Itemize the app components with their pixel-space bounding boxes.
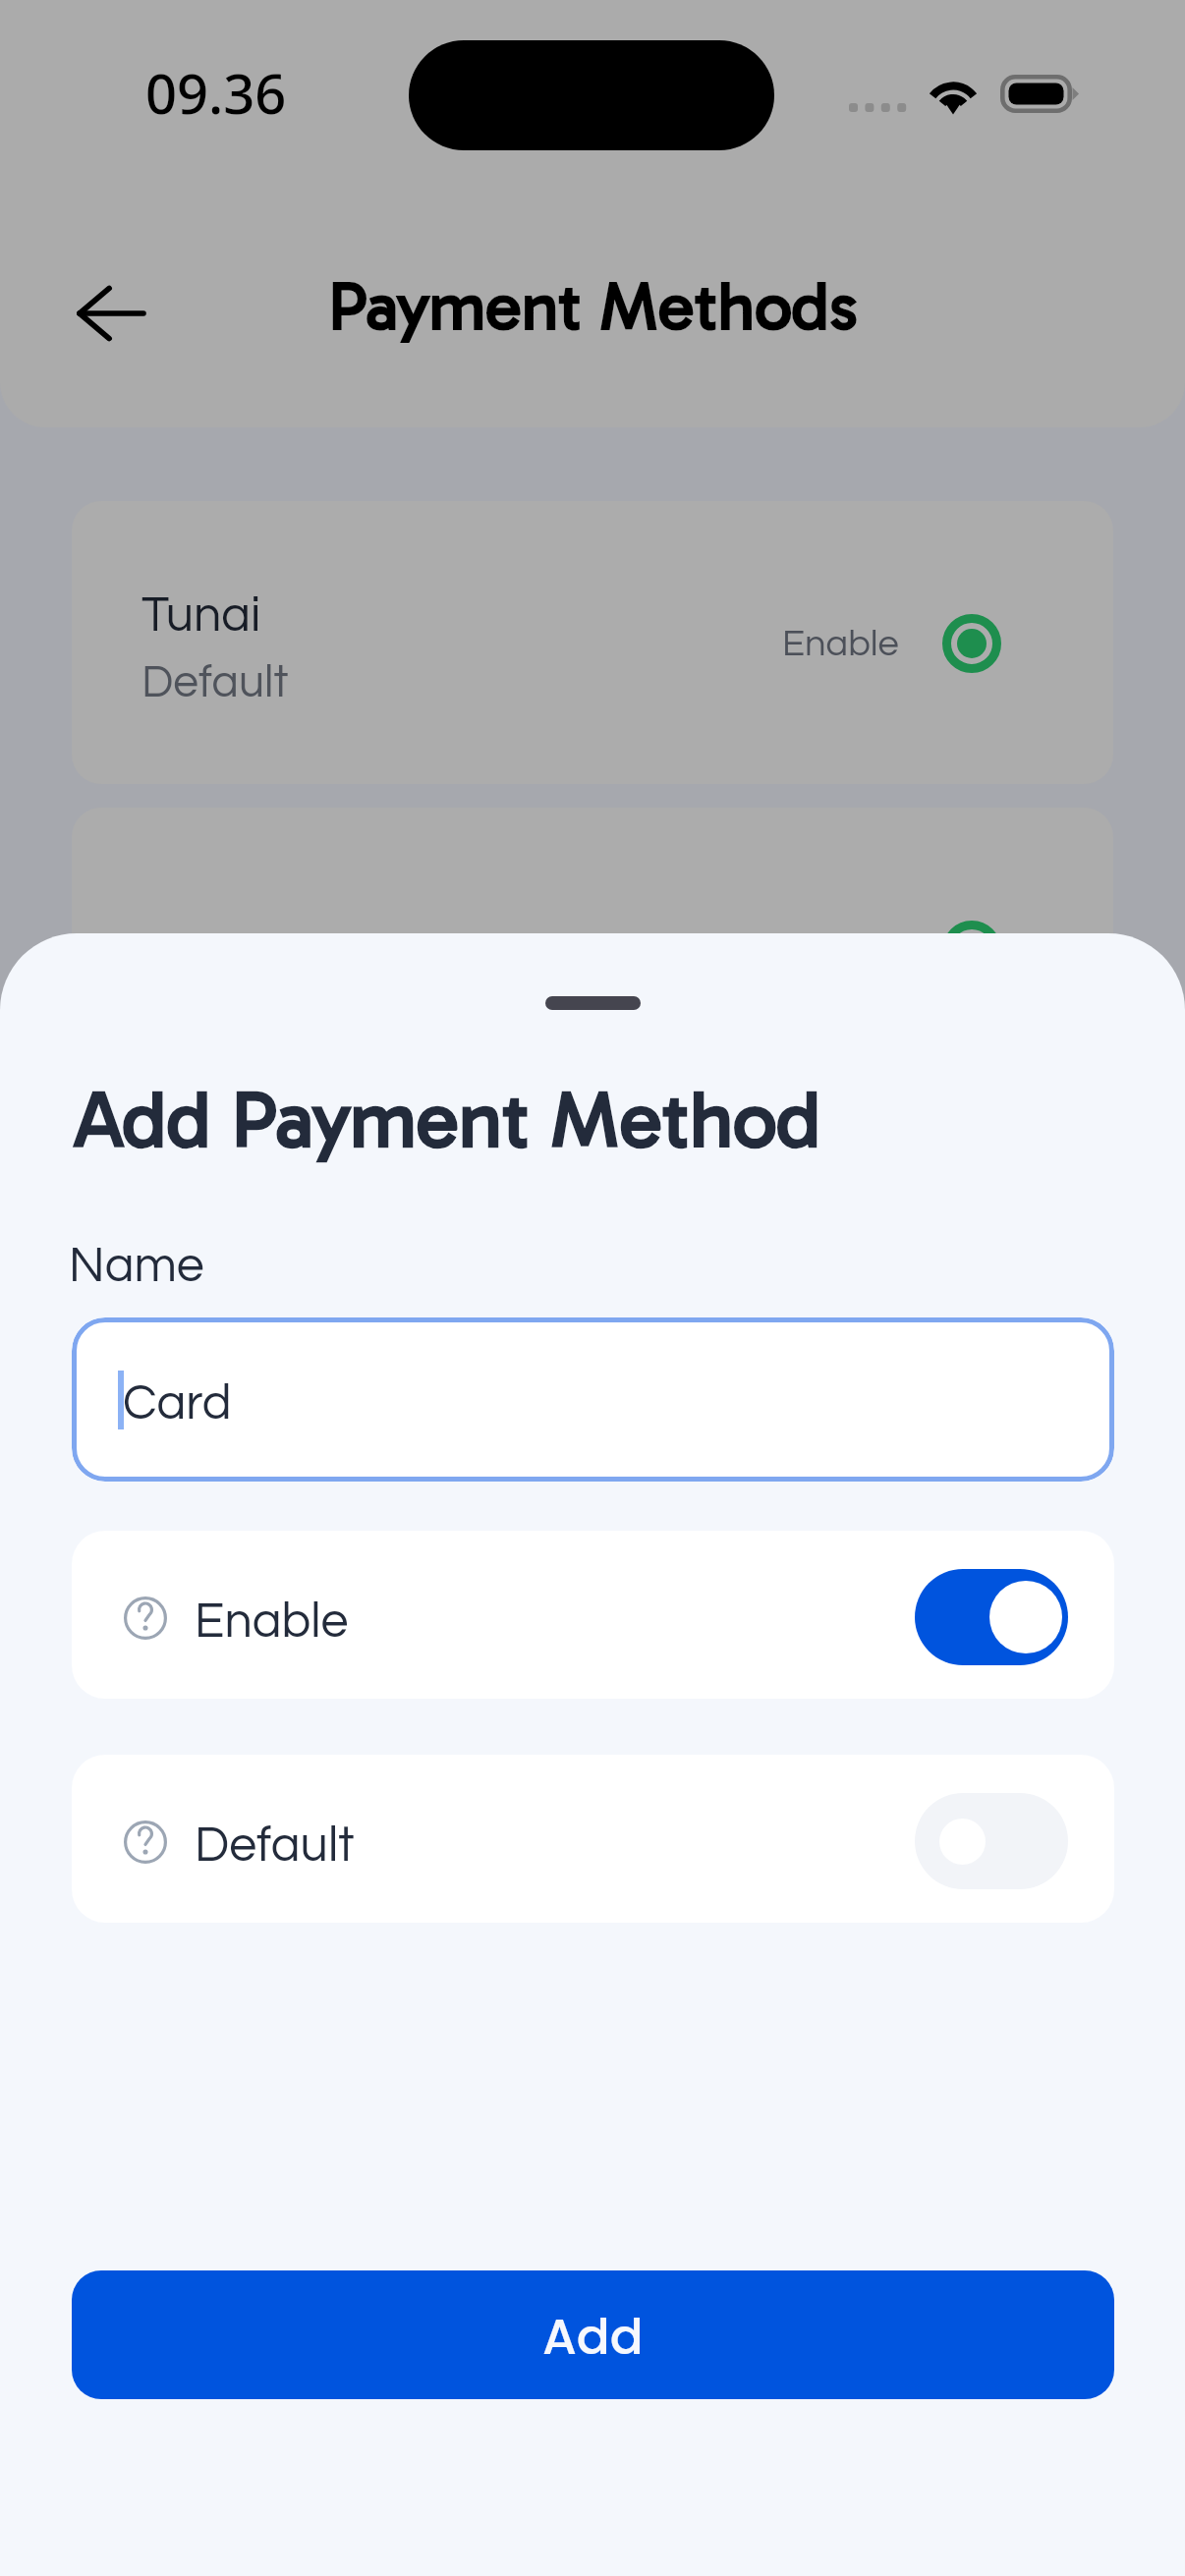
staticText: Default — [195, 1820, 355, 1872]
button[interactable]: Back — [65, 267, 157, 360]
staticText: Payment Methods — [328, 266, 859, 347]
button[interactable]: Add — [72, 2270, 1114, 2399]
staticText: Enable — [782, 625, 899, 663]
button[interactable]: Enable — [72, 1531, 1114, 1699]
staticText: Add Payment Method — [73, 1073, 821, 1167]
button[interactable]: Toggle Default — [915, 1793, 1068, 1889]
button[interactable]: Selected payment method — [941, 920, 1002, 980]
staticText: Add — [542, 2303, 644, 2372]
button[interactable]: Card — [72, 1317, 1114, 1482]
button[interactable]: Toggle Enable — [915, 1569, 1068, 1665]
staticText: Enable — [195, 1596, 349, 1648]
button[interactable]: Default — [72, 1755, 1114, 1923]
button[interactable]: Selected payment method — [941, 613, 1002, 674]
button[interactable]: Tunai — [72, 501, 1113, 784]
staticText: Enable — [782, 931, 899, 970]
staticText: Default — [141, 659, 289, 705]
staticText: 09.36 — [145, 55, 287, 130]
staticText: Transfer Bank — [141, 933, 447, 984]
staticText: Name — [69, 1241, 204, 1292]
button[interactable]: Transfer Bank — [72, 808, 1113, 1091]
staticText: Card — [123, 1378, 232, 1429]
staticText: Tunai — [141, 590, 261, 642]
